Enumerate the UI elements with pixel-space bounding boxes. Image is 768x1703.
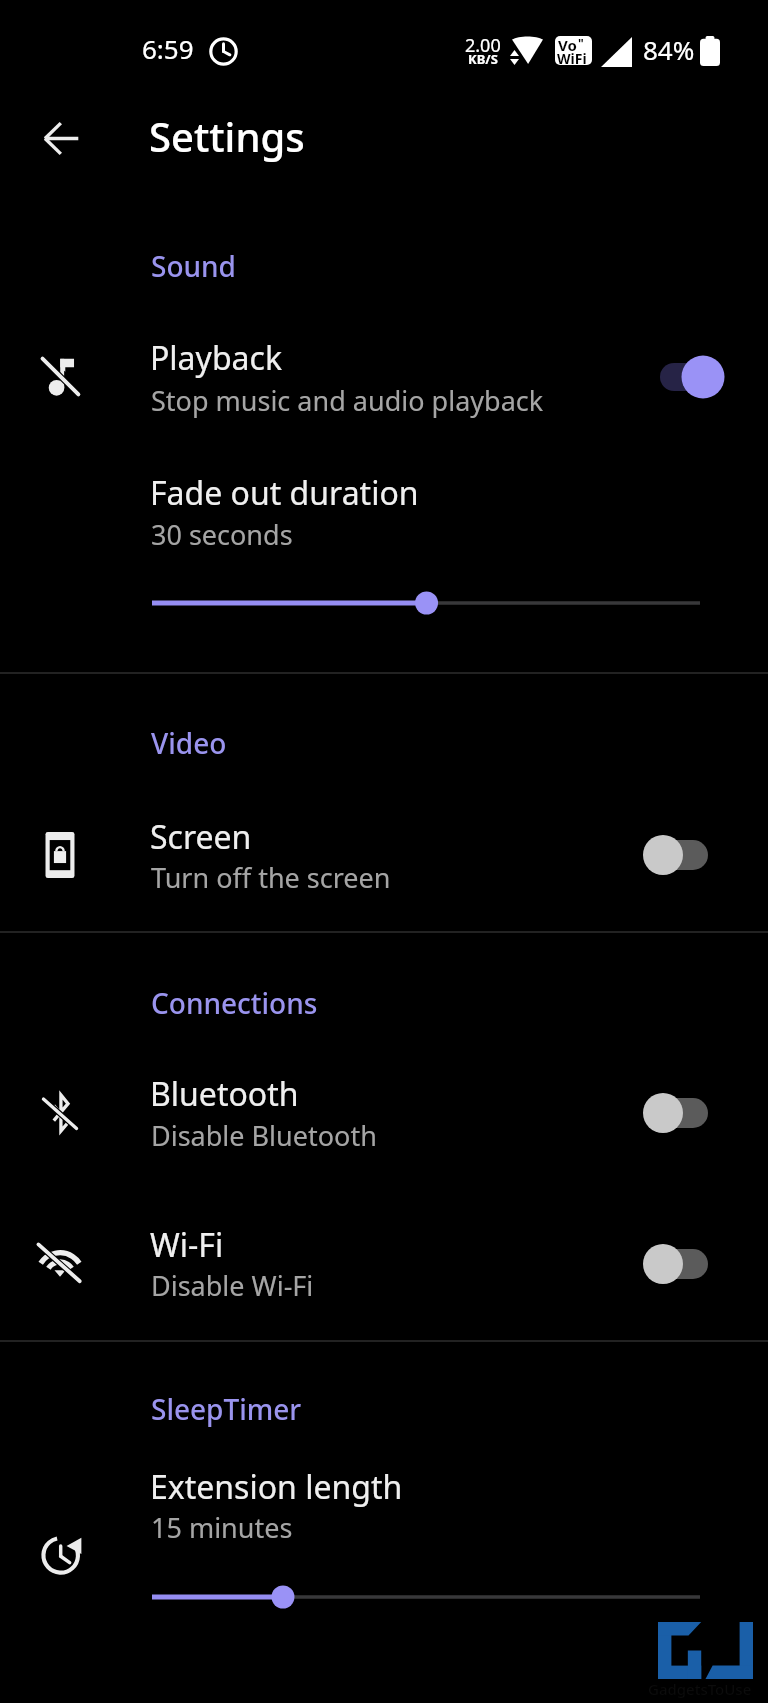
staticText: Extension length (150, 1465, 403, 1509)
button[interactable]: Bluetooth (0, 1058, 768, 1170)
staticText: Settings (149, 109, 305, 163)
staticText: Wi-Fi (150, 1223, 224, 1267)
staticText: KB/S (468, 50, 498, 68)
button[interactable]: Fade out duration (0, 455, 768, 645)
staticText: Sound (151, 247, 236, 285)
button[interactable]: Playback toggle, on (645, 347, 741, 407)
staticText: GadgetsToUse (648, 1679, 752, 1699)
staticText: Fade out duration (150, 471, 419, 515)
button[interactable]: Playback (0, 322, 768, 434)
button[interactable]: Toggle, off (630, 1234, 726, 1294)
staticText: " (578, 36, 584, 51)
button[interactable]: Back (27, 104, 95, 172)
staticText: WiFi (557, 49, 587, 65)
staticText: Stop music and audio playback (151, 382, 544, 419)
staticText: 2.00 (465, 33, 501, 58)
staticText: Bluetooth (150, 1072, 299, 1116)
staticText: Disable Bluetooth (151, 1117, 377, 1154)
staticText: Video (151, 724, 227, 762)
button[interactable]: Slider (152, 1575, 700, 1619)
staticText: SleepTimer (151, 1390, 302, 1428)
button[interactable]: Slider (152, 581, 700, 625)
staticText: 84% (643, 32, 695, 67)
staticText: 30 seconds (151, 516, 293, 553)
staticText: Connections (151, 984, 318, 1022)
staticText: Turn off the screen (151, 859, 391, 896)
staticText: Screen (150, 815, 252, 859)
staticText: Playback (150, 336, 282, 380)
staticText: 6:59 (142, 31, 194, 66)
staticText: 15 minutes (151, 1509, 293, 1546)
staticText: Vo (558, 36, 577, 55)
button[interactable]: Toggle, off (630, 825, 726, 885)
button[interactable]: Screen (0, 800, 768, 912)
button[interactable]: Extension length (0, 1450, 768, 1640)
button[interactable]: Toggle, off (630, 1083, 726, 1143)
staticText: Disable Wi-Fi (151, 1267, 314, 1304)
button[interactable]: Wi-Fi (0, 1209, 768, 1321)
